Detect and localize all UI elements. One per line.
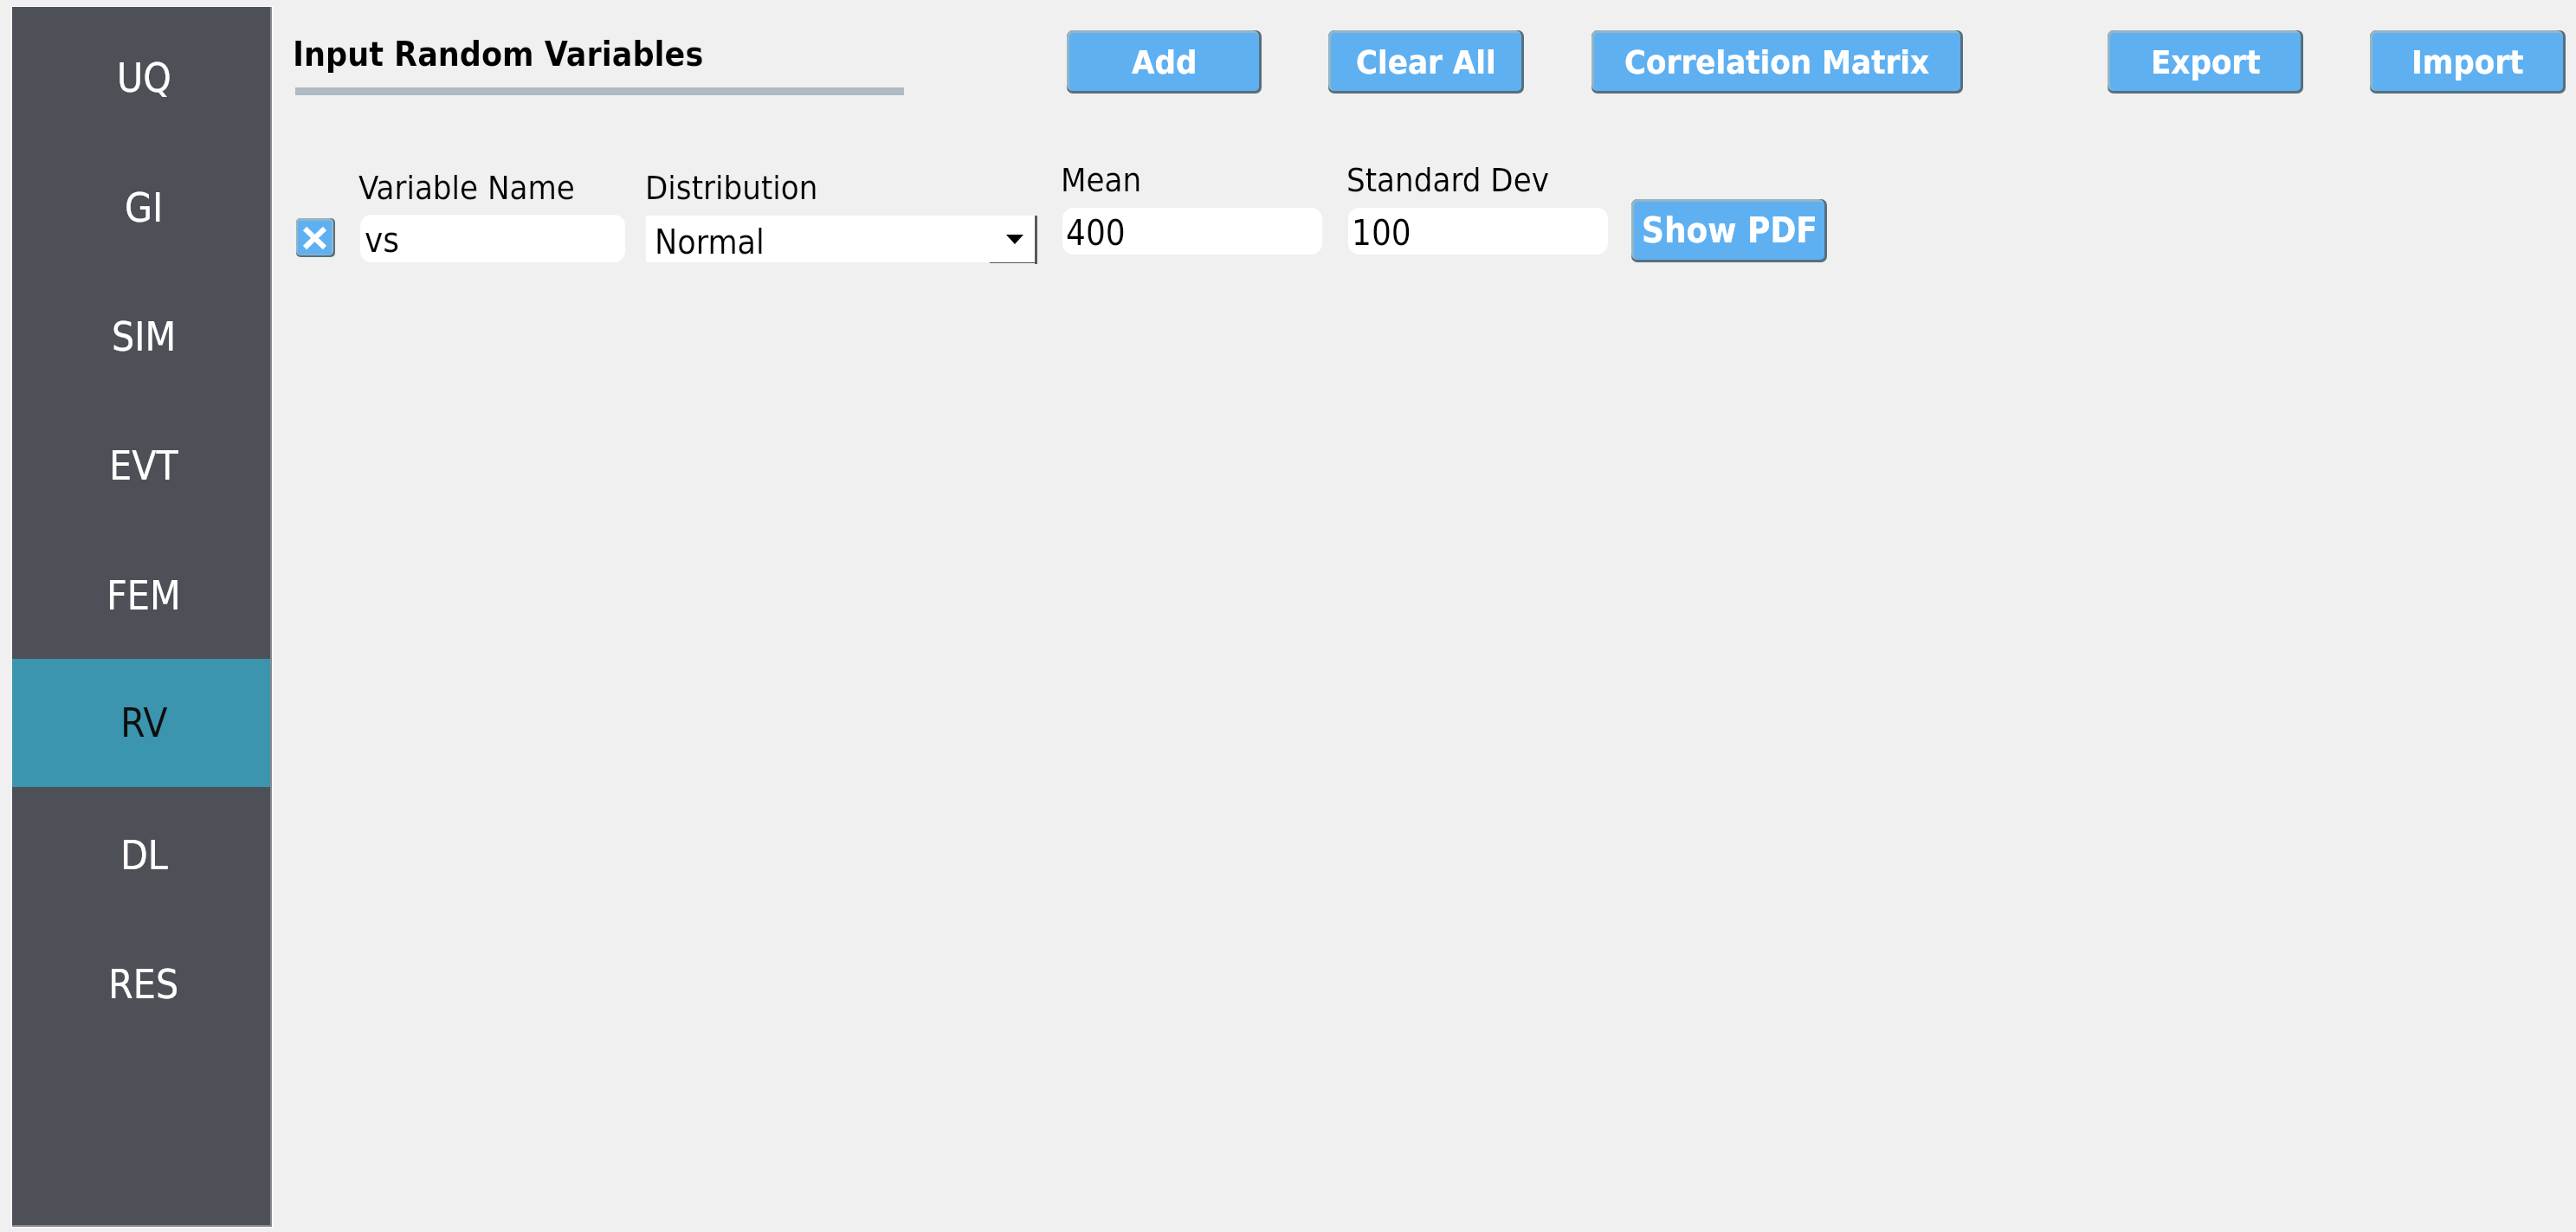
button[interactable]: Export bbox=[2108, 30, 2303, 94]
button[interactable]: RV bbox=[12, 659, 270, 787]
button[interactable]: 400 bbox=[1062, 208, 1322, 255]
button[interactable]: RES bbox=[12, 920, 270, 1048]
staticText: RV bbox=[120, 700, 168, 746]
staticText: Variable Name bbox=[358, 169, 575, 207]
button[interactable]: Remove random variable bbox=[296, 218, 335, 257]
staticText: 100 bbox=[1352, 213, 1411, 254]
staticText: RES bbox=[108, 961, 179, 1008]
staticText: GI bbox=[125, 184, 164, 231]
button[interactable]: Add bbox=[1067, 30, 1262, 94]
button[interactable]: 100 bbox=[1348, 208, 1608, 255]
staticText: Show PDF bbox=[1642, 210, 1817, 251]
staticText: FEM bbox=[107, 572, 181, 619]
staticText: SIM bbox=[112, 313, 177, 360]
button[interactable]: Distribution: Normal bbox=[646, 216, 1037, 266]
button[interactable]: Clear All bbox=[1328, 30, 1524, 94]
staticText: Distribution bbox=[645, 169, 818, 207]
staticText: EVT bbox=[109, 442, 178, 489]
staticText: Standard Dev bbox=[1346, 161, 1549, 199]
button[interactable]: vs bbox=[360, 215, 625, 262]
button[interactable]: Correlation Matrix bbox=[1591, 30, 1963, 94]
staticText: Input Random Variables bbox=[293, 35, 704, 74]
staticText: Export bbox=[2151, 43, 2261, 81]
button[interactable]: FEM bbox=[12, 532, 270, 660]
button[interactable]: EVT bbox=[12, 402, 270, 530]
staticText: Import bbox=[2411, 43, 2524, 81]
staticText: vs bbox=[365, 220, 400, 261]
staticText: Correlation Matrix bbox=[1624, 43, 1930, 81]
staticText: Normal bbox=[655, 223, 765, 261]
button[interactable]: SIM bbox=[12, 273, 270, 401]
button[interactable]: Show PDF bbox=[1631, 199, 1827, 262]
staticText: Add bbox=[1132, 43, 1198, 81]
button[interactable]: GI bbox=[12, 144, 270, 272]
button[interactable]: DL bbox=[12, 791, 270, 919]
staticText: Mean bbox=[1061, 161, 1142, 199]
staticText: DL bbox=[120, 832, 168, 879]
button[interactable]: UQ bbox=[12, 14, 270, 142]
staticText: Clear All bbox=[1356, 43, 1496, 81]
staticText: UQ bbox=[117, 55, 171, 101]
button[interactable]: Import bbox=[2370, 30, 2566, 94]
staticText: 400 bbox=[1066, 213, 1126, 254]
